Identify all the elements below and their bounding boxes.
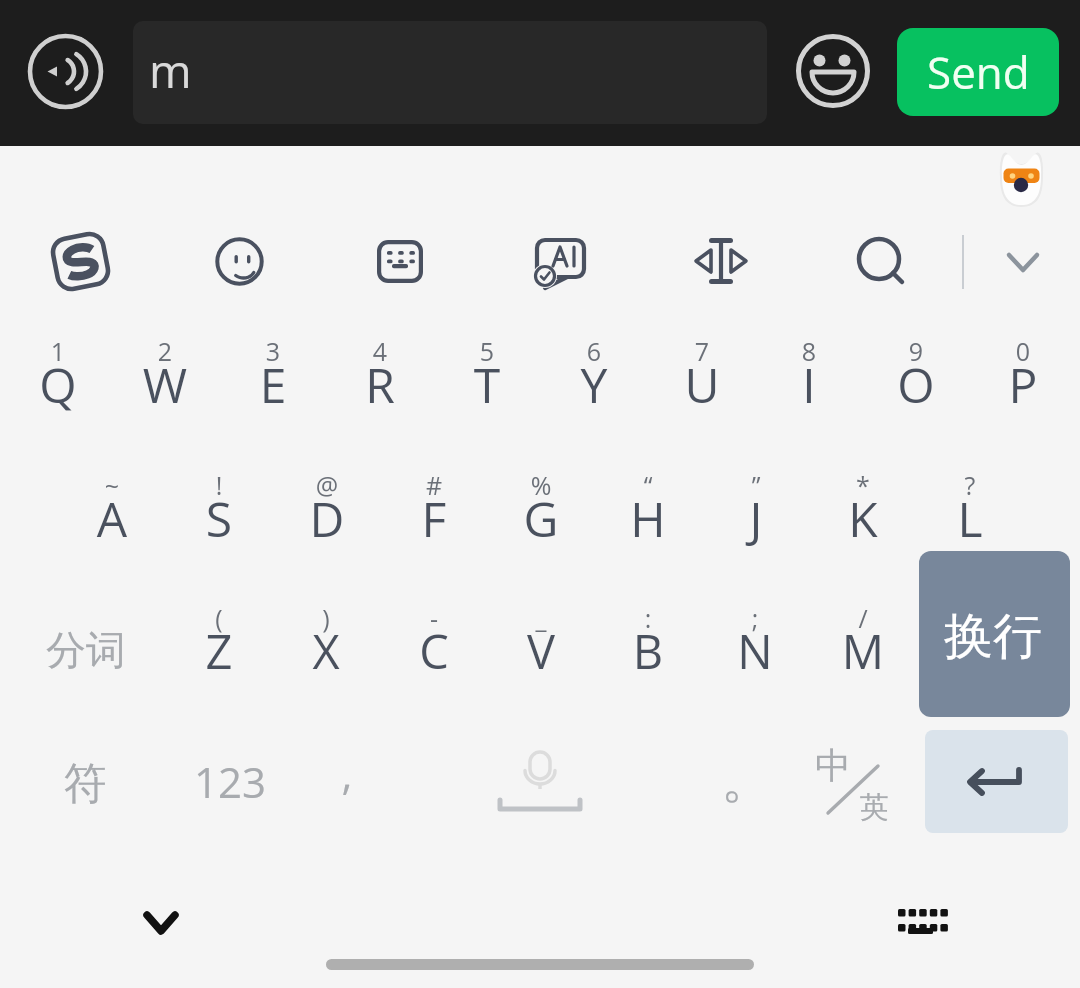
button[interactable] (380, 597, 487, 717)
button[interactable] (5, 330, 112, 450)
staticText: L (850, 486, 1080, 551)
staticText: Send (927, 42, 1030, 102)
staticText: ” (636, 468, 876, 502)
staticText: ( (99, 601, 339, 635)
button[interactable]: Enter (925, 730, 1068, 833)
button[interactable]: Hide keyboard (131, 890, 191, 950)
button[interactable]: Assistant (998, 147, 1046, 209)
button[interactable] (166, 464, 273, 584)
staticText: T (367, 352, 607, 417)
staticText: 5 (367, 334, 607, 368)
button[interactable] (59, 464, 166, 584)
staticText: : (528, 601, 768, 635)
button[interactable] (273, 597, 380, 717)
button[interactable]: Search (851, 231, 909, 289)
staticText: W (45, 352, 285, 417)
staticText: H (528, 486, 768, 551)
button[interactable] (380, 464, 487, 584)
staticText: 分词 (0, 625, 206, 675)
staticText: I (689, 352, 929, 417)
button[interactable] (755, 330, 862, 450)
button[interactable]: Emoji (795, 33, 871, 109)
staticText: C (314, 619, 554, 683)
staticText: ~ (0, 468, 232, 502)
staticText: K (743, 486, 983, 551)
button[interactable] (30, 733, 140, 837)
button[interactable] (595, 464, 702, 584)
button[interactable] (30, 597, 140, 709)
button[interactable] (809, 597, 916, 717)
staticText: * (743, 468, 983, 502)
button[interactable] (648, 330, 755, 450)
button[interactable] (487, 597, 594, 717)
staticText: J (636, 486, 876, 551)
staticText: R (260, 352, 500, 417)
button[interactable] (273, 464, 380, 584)
staticText: V (421, 619, 661, 683)
button[interactable] (541, 330, 648, 450)
button[interactable]: AI assist (533, 237, 587, 291)
button[interactable]: Switch keyboard (890, 896, 950, 944)
staticText: E (153, 352, 393, 417)
button[interactable] (326, 330, 433, 450)
staticText: ) (206, 601, 446, 635)
staticText: ; (635, 601, 875, 635)
button[interactable] (970, 330, 1077, 450)
staticText: 4 (260, 334, 500, 368)
staticText: / (743, 601, 983, 635)
button[interactable] (112, 330, 219, 450)
staticText: D (207, 486, 447, 551)
button[interactable]: Keyboard layout (377, 240, 423, 283)
button[interactable] (170, 733, 290, 837)
button[interactable] (488, 464, 595, 584)
button[interactable]: Send (897, 28, 1059, 116)
staticText: % (421, 468, 661, 502)
staticText: N (635, 619, 875, 683)
staticText: # (314, 468, 554, 502)
staticText: M (743, 619, 983, 683)
staticText: “ (528, 468, 768, 502)
button[interactable]: Space (420, 733, 660, 837)
staticText: 换行 (873, 606, 1080, 668)
staticText: Y (474, 352, 714, 417)
button[interactable]: Chinese English toggle (805, 733, 909, 837)
button[interactable]: Emoji panel (215, 237, 264, 286)
staticText: 6 (474, 334, 714, 368)
staticText: X (206, 619, 446, 683)
staticText: 3 (153, 334, 393, 368)
button[interactable] (219, 330, 326, 450)
staticText: 符 (0, 757, 205, 811)
button[interactable]: Sogou settings (49, 230, 112, 293)
button[interactable] (917, 464, 1024, 584)
staticText: _ (421, 601, 661, 635)
button[interactable]: Collapse toolbar (997, 243, 1049, 295)
staticText: 。 (627, 747, 867, 813)
button[interactable]: Voice input (27, 33, 104, 110)
button[interactable] (686, 733, 780, 837)
staticText: ? (850, 468, 1080, 502)
staticText: 7 (582, 334, 822, 368)
staticText: 1 (0, 334, 178, 368)
staticText: 0 (903, 334, 1080, 368)
staticText: F (314, 486, 554, 551)
button[interactable] (702, 464, 809, 584)
button[interactable]: Move cursor (687, 231, 755, 299)
button[interactable] (919, 551, 1070, 717)
button[interactable]: m (133, 21, 767, 124)
button[interactable] (595, 597, 702, 717)
staticText: ! (99, 468, 339, 502)
staticText: U (582, 352, 822, 417)
button[interactable] (300, 733, 394, 837)
button[interactable] (434, 330, 541, 450)
staticText: P (903, 352, 1080, 417)
button[interactable] (809, 464, 916, 584)
staticText: S (99, 486, 339, 551)
staticText: 英 (754, 789, 994, 826)
staticText: 123 (110, 753, 350, 810)
staticText: m (149, 39, 192, 102)
button[interactable] (702, 597, 809, 717)
staticText: @ (207, 468, 447, 502)
button[interactable] (863, 330, 970, 450)
button[interactable] (166, 597, 273, 717)
staticText: 2 (45, 334, 285, 368)
